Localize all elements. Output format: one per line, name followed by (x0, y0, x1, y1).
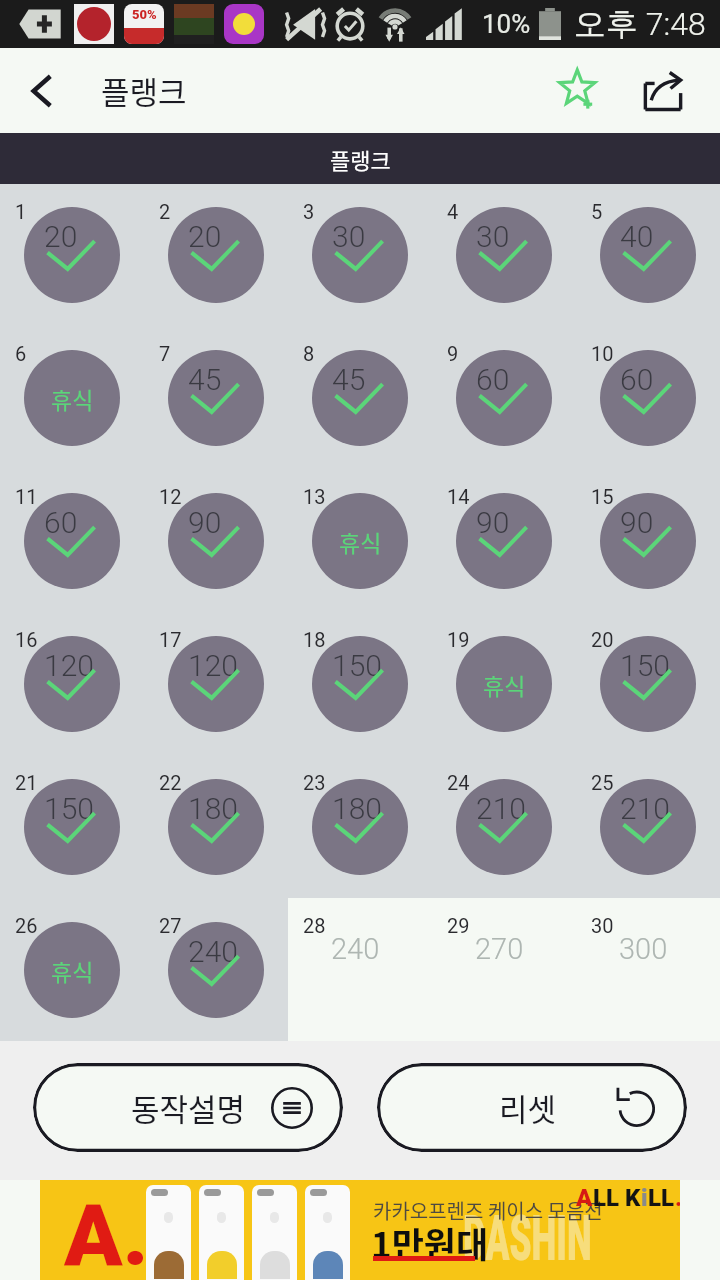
button[interactable]: 휴식 (288, 469, 432, 612)
button[interactable]: Favorite (546, 58, 612, 124)
button[interactable]: 300 (576, 898, 720, 1041)
button[interactable]: A. (0, 1180, 720, 1280)
staticText: 45 (332, 362, 366, 397)
staticText: 11 (15, 485, 38, 508)
staticText: 리셋 (499, 1085, 557, 1130)
staticText: 8 (303, 342, 315, 365)
staticText: 60 (620, 362, 654, 397)
button[interactable]: Share (630, 58, 696, 124)
staticText: 28 (303, 914, 326, 937)
staticText: 150 (620, 648, 670, 683)
staticText: 1만원대 (371, 1217, 489, 1268)
staticText: 13 (303, 485, 326, 508)
staticText: 23 (303, 771, 326, 794)
button[interactable]: 휴식 (0, 326, 144, 469)
staticText: 26 (15, 914, 38, 937)
staticText: 7 (159, 342, 171, 365)
staticText: 동작설명 (131, 1085, 246, 1130)
button[interactable]: 90 (576, 469, 720, 612)
staticText: 120 (188, 648, 238, 683)
button[interactable]: 60 (0, 469, 144, 612)
staticText: 180 (188, 791, 238, 826)
staticText: 21 (15, 771, 38, 794)
staticText: 카카오프렌즈 케이스 모음전 (373, 1196, 603, 1225)
button[interactable]: 240 (288, 898, 432, 1041)
staticText: 플랭크 (101, 68, 187, 113)
staticText: 120 (44, 648, 94, 683)
staticText: 210 (620, 791, 670, 826)
button[interactable]: 150 (288, 612, 432, 755)
staticText: 30 (476, 219, 510, 254)
staticText: 휴식 (483, 668, 526, 701)
staticText: 19 (447, 628, 470, 651)
button[interactable]: 리셋 (377, 1063, 687, 1152)
button[interactable]: 20 (0, 184, 144, 326)
staticText: 20 (188, 219, 222, 254)
staticText: 22 (159, 771, 182, 794)
staticText: LL K (593, 1184, 641, 1212)
button[interactable]: 150 (0, 755, 144, 898)
staticText: 180 (332, 791, 382, 826)
staticText: 휴식 (51, 382, 94, 415)
staticText: 90 (476, 505, 510, 540)
staticText: 휴식 (339, 525, 382, 558)
staticText: A. (64, 1185, 149, 1280)
staticText: 15 (591, 485, 614, 508)
staticText: 20 (591, 628, 614, 651)
staticText: i (641, 1184, 648, 1212)
staticText: DASHIN (463, 1202, 631, 1276)
staticText: LL (648, 1184, 675, 1212)
staticText: 휴식 (51, 954, 94, 987)
staticText: 60 (476, 362, 510, 397)
button[interactable]: Back (0, 49, 84, 133)
staticText: A (576, 1184, 593, 1212)
staticText: 25 (591, 771, 614, 794)
staticText: 3 (303, 200, 315, 223)
staticText: 40 (620, 219, 654, 254)
button[interactable]: 30 (432, 184, 576, 326)
staticText: 50% (132, 7, 157, 22)
button[interactable]: 210 (432, 755, 576, 898)
staticText: 240 (331, 932, 380, 966)
button[interactable]: 90 (432, 469, 576, 612)
button[interactable]: 동작설명 (33, 1063, 343, 1152)
button[interactable]: 40 (576, 184, 720, 326)
button[interactable]: 120 (144, 612, 288, 755)
staticText: 90 (620, 505, 654, 540)
staticText: . (675, 1184, 680, 1212)
staticText: 10% (482, 9, 531, 39)
staticText: 240 (188, 934, 238, 969)
button[interactable]: 45 (288, 326, 432, 469)
button[interactable]: 20 (144, 184, 288, 326)
button[interactable]: 210 (576, 755, 720, 898)
staticText: 300 (619, 932, 668, 966)
staticText: 150 (44, 791, 94, 826)
staticText: 20 (44, 219, 78, 254)
button[interactable]: 180 (288, 755, 432, 898)
staticText: 60 (44, 505, 78, 540)
staticText: 27 (159, 914, 182, 937)
button[interactable]: 60 (576, 326, 720, 469)
staticText: 210 (476, 791, 526, 826)
button[interactable]: 60 (432, 326, 576, 469)
staticText: 2 (159, 200, 171, 223)
button[interactable]: 30 (288, 184, 432, 326)
button[interactable]: 45 (144, 326, 288, 469)
staticText: 12 (159, 485, 182, 508)
staticText: 270 (475, 932, 524, 966)
staticText: 5 (591, 200, 603, 223)
button[interactable]: 휴식 (432, 612, 576, 755)
button[interactable]: 휴식 (0, 898, 144, 1041)
button[interactable]: 240 (144, 898, 288, 1041)
button[interactable]: 150 (576, 612, 720, 755)
button[interactable]: 120 (0, 612, 144, 755)
staticText: 플랭크 (330, 143, 391, 175)
staticText: 14 (447, 485, 470, 508)
button[interactable]: 180 (144, 755, 288, 898)
staticText: 18 (303, 628, 326, 651)
staticText: 16 (15, 628, 38, 651)
staticText: 90 (188, 505, 222, 540)
staticText: 29 (447, 914, 470, 937)
button[interactable]: 90 (144, 469, 288, 612)
button[interactable]: 270 (432, 898, 576, 1041)
